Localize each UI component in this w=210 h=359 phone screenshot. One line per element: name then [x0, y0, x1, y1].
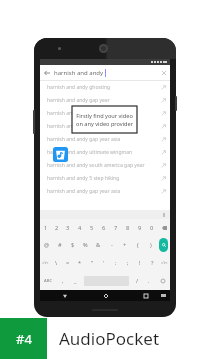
button[interactable]: 6 — [98, 219, 110, 236]
button[interactable]: harnish and andy gap year asia — [40, 185, 170, 198]
button[interactable]: * — [74, 254, 86, 272]
button[interactable]: ( — [131, 236, 144, 254]
button[interactable]: harnish and andy 5 step hiking — [40, 172, 170, 185]
staticText: 6 — [102, 224, 106, 232]
staticText: harnish and andy south america gap year — [47, 162, 145, 169]
staticText: . — [148, 277, 150, 285]
staticText: harnish and andy india — [47, 110, 101, 117]
button[interactable]: @ — [40, 236, 53, 254]
staticText: @ — [44, 241, 50, 249]
staticText: = — [66, 259, 70, 267]
staticText: % — [83, 241, 88, 249]
button[interactable]: , — [57, 272, 69, 290]
button[interactable]: =\< — [158, 254, 170, 272]
staticText: 5 — [90, 224, 94, 232]
staticText: * — [78, 259, 82, 267]
staticText: =\< — [161, 260, 168, 266]
button[interactable]: 7 — [110, 219, 122, 236]
staticText: harnish and andy gap year asia — [47, 188, 121, 195]
button[interactable]: Back — [60, 291, 69, 300]
staticText: harnish and andy ghosting — [47, 84, 111, 91]
button[interactable]: 1 — [40, 219, 51, 236]
button[interactable]: 8 — [122, 219, 134, 236]
staticText: 1 — [44, 224, 48, 232]
button[interactable]: \ — [51, 254, 62, 272]
staticText: ! — [139, 259, 141, 267]
button[interactable]: % — [79, 236, 92, 254]
button[interactable]: Back — [40, 66, 54, 80]
staticText: 8 — [126, 224, 130, 232]
staticText: harnish and andy 5 step hiking — [47, 175, 120, 182]
button[interactable]: ABC — [40, 272, 57, 290]
button[interactable]: # — [53, 236, 66, 254]
staticText: harnish and andy gap year — [47, 97, 110, 104]
button[interactable]: . — [143, 272, 155, 290]
button[interactable]: 9 — [134, 219, 146, 236]
button[interactable]: 4 — [74, 219, 86, 236]
button[interactable]: harnish and andy asia — [40, 120, 170, 133]
button[interactable]: : — [110, 254, 122, 272]
button[interactable]: = — [62, 254, 74, 272]
staticText: harnish and andy gap year asia — [47, 136, 121, 143]
staticText: & — [96, 241, 101, 249]
button[interactable]: harnish and andy ghosting — [40, 81, 170, 94]
staticText: 0 — [150, 224, 154, 232]
button[interactable]: Home — [101, 291, 110, 300]
staticText: 7 — [114, 224, 118, 232]
button[interactable]: ' — [98, 254, 110, 272]
button[interactable]: ) — [144, 236, 157, 254]
button[interactable]: harnish and andy india — [40, 107, 170, 120]
staticText: =\< — [42, 260, 49, 266]
staticText: 9 — [138, 224, 142, 232]
staticText: , — [62, 277, 64, 285]
button[interactable]: ! — [134, 254, 146, 272]
button[interactable]: harnish and andy ultimate wingman — [40, 146, 170, 159]
button[interactable]: & — [92, 236, 105, 254]
button[interactable]: Search — [159, 238, 168, 252]
button[interactable]: $ — [66, 236, 79, 254]
staticText: ABC — [44, 278, 53, 284]
staticText: ) — [150, 241, 152, 249]
staticText: # — [58, 241, 62, 249]
button[interactable]: + — [118, 236, 131, 254]
staticText: harnish and andy ultimate wingman — [47, 149, 133, 156]
staticText: ' — [103, 259, 105, 267]
staticText: 2 — [55, 224, 59, 232]
button[interactable]: harnish and andy south america gap year — [40, 159, 170, 172]
staticText: harnish and andy — [54, 69, 104, 77]
button[interactable]: AudioPocket — [53, 147, 68, 162]
button[interactable]: ? — [146, 254, 158, 272]
button[interactable]: 3 — [62, 219, 74, 236]
staticText: _ — [74, 277, 77, 285]
button[interactable]: 2 — [51, 219, 62, 236]
button[interactable]: =\< — [40, 254, 51, 272]
button[interactable]: 5 — [86, 219, 98, 236]
staticText: - — [111, 241, 113, 249]
button[interactable]: Emoji — [155, 272, 170, 290]
button[interactable]: - — [105, 236, 118, 254]
staticText: AudioPocket — [59, 327, 160, 350]
button[interactable]: / — [131, 272, 143, 290]
button[interactable]: 0 — [146, 219, 158, 236]
staticText: #4 — [16, 330, 32, 348]
button[interactable]: Recent apps — [141, 291, 150, 300]
button[interactable]: ; — [122, 254, 134, 272]
button[interactable]: harnish and andy gap year — [40, 94, 170, 107]
staticText: ( — [137, 241, 139, 249]
staticText: \ — [55, 259, 58, 267]
staticText: / — [136, 277, 139, 285]
staticText: " — [91, 259, 94, 267]
button[interactable]: Clear search — [158, 67, 170, 79]
button[interactable]: _ — [69, 272, 82, 290]
staticText: + — [123, 241, 127, 249]
staticText: harnish and andy asia — [47, 123, 99, 130]
button[interactable]: harnish and andy gap year asia — [40, 133, 170, 146]
button[interactable]: " — [86, 254, 98, 272]
button[interactable]: Delete — [158, 219, 170, 236]
staticText: 3 — [66, 224, 70, 232]
staticText: : — [115, 259, 117, 267]
staticText: Firstly find your video on any video pro… — [75, 112, 134, 128]
button[interactable]: Voice input — [161, 212, 167, 218]
